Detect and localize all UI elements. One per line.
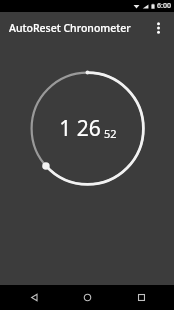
button[interactable]: Recent apps xyxy=(121,285,161,310)
button[interactable]: More options xyxy=(142,12,174,44)
staticText: AutoReset Chronometer xyxy=(9,21,131,35)
staticText: 1 26 xyxy=(59,114,101,143)
staticText: 6:00 xyxy=(157,1,171,11)
button[interactable]: Chronometer dial xyxy=(29,70,146,187)
button[interactable]: Home xyxy=(67,285,107,310)
button[interactable]: Back xyxy=(14,285,54,310)
staticText: 52 xyxy=(104,126,117,141)
